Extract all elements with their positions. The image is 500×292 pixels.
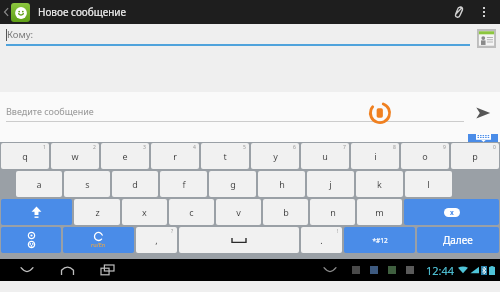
staticText: y <box>273 150 278 162</box>
button[interactable]: k <box>356 171 403 197</box>
staticText: 7 <box>343 144 346 151</box>
button[interactable]: . <box>301 227 342 253</box>
staticText: o <box>422 150 428 162</box>
button[interactable]: u <box>301 143 349 169</box>
button[interactable]: More options <box>474 2 494 22</box>
button[interactable]: s <box>64 171 110 197</box>
staticText: f <box>182 178 186 190</box>
staticText: 9 <box>443 144 446 151</box>
button[interactable]: e <box>101 143 149 169</box>
staticText: h <box>279 178 285 190</box>
staticText: r <box>173 150 177 162</box>
button[interactable]: ru/En <box>63 227 134 253</box>
button[interactable]: Space <box>179 227 299 253</box>
staticText: x <box>450 208 454 217</box>
staticText: . <box>320 234 323 246</box>
button[interactable]: a <box>16 171 62 197</box>
button[interactable]: c <box>169 199 214 225</box>
staticText: z <box>95 206 100 218</box>
staticText: x <box>142 206 147 218</box>
staticText: Далее <box>443 233 473 247</box>
button[interactable]: Keyboard <box>468 134 498 142</box>
button[interactable]: Введите сообщение <box>6 105 464 122</box>
staticText: n <box>330 206 336 218</box>
button[interactable]: h <box>258 171 305 197</box>
button[interactable]: w <box>51 143 99 169</box>
staticText: Кому: <box>7 28 34 41</box>
button[interactable]: Кому: <box>6 28 470 46</box>
staticText: l <box>427 178 430 190</box>
button[interactable]: r <box>151 143 199 169</box>
staticText: j <box>329 178 332 190</box>
button[interactable]: b <box>263 199 308 225</box>
button[interactable]: j <box>307 171 354 197</box>
staticText: e <box>122 150 128 162</box>
staticText: 0 <box>493 144 496 151</box>
button[interactable]: v <box>216 199 261 225</box>
button[interactable]: g <box>209 171 256 197</box>
staticText: Введите сообщение <box>6 105 94 117</box>
button[interactable]: Hide keyboard <box>318 259 342 281</box>
staticText: ? <box>171 228 174 235</box>
staticText: c <box>189 206 194 218</box>
button[interactable]: Pick contact <box>476 28 496 48</box>
staticText: 4 <box>193 144 196 151</box>
staticText: q <box>22 150 28 162</box>
button[interactable]: Back <box>14 259 40 281</box>
button[interactable]: p <box>451 143 499 169</box>
button[interactable]: o <box>401 143 449 169</box>
button[interactable]: t <box>201 143 249 169</box>
button[interactable]: d <box>112 171 158 197</box>
staticText: 12:44 <box>426 263 455 278</box>
staticText: a <box>36 178 42 190</box>
staticText: d <box>132 178 138 190</box>
button[interactable]: Backspace <box>404 199 499 225</box>
button[interactable]: n <box>310 199 355 225</box>
staticText: *#12 <box>372 236 388 245</box>
button[interactable]: Далее <box>417 227 499 253</box>
staticText: p <box>472 150 478 162</box>
staticText: g <box>230 178 236 190</box>
button[interactable]: Send <box>470 100 496 126</box>
button[interactable]: l <box>405 171 452 197</box>
button[interactable]: Recent apps <box>94 259 120 281</box>
staticText: u <box>322 150 328 162</box>
staticText: 6 <box>293 144 296 151</box>
button[interactable]: m <box>357 199 402 225</box>
staticText: 8 <box>393 144 396 151</box>
button[interactable]: y <box>251 143 299 169</box>
staticText: 1 <box>43 144 46 151</box>
button[interactable]: *#12 <box>344 227 415 253</box>
button[interactable]: Attach <box>446 0 470 24</box>
staticText: , <box>155 234 158 246</box>
staticText: Новое сообщение <box>38 5 127 19</box>
staticText: w <box>71 150 79 162</box>
button[interactable]: Home <box>54 259 80 281</box>
button[interactable]: f <box>160 171 207 197</box>
staticText: ru/En <box>91 241 106 248</box>
button[interactable]: , <box>136 227 177 253</box>
staticText: ! <box>337 228 339 235</box>
button[interactable]: Shift <box>1 199 72 225</box>
button[interactable]: q <box>1 143 49 169</box>
staticText: m <box>375 206 384 218</box>
staticText: b <box>283 206 289 218</box>
staticText: v <box>236 206 241 218</box>
staticText: s <box>85 178 90 190</box>
staticText: 2 <box>93 144 96 151</box>
staticText: 5 <box>243 144 246 151</box>
button[interactable]: x <box>122 199 167 225</box>
button[interactable]: i <box>351 143 399 169</box>
staticText: k <box>377 178 382 190</box>
staticText: t <box>223 150 227 162</box>
button[interactable]: z <box>74 199 120 225</box>
button[interactable]: Keyboard settings <box>1 227 61 253</box>
staticText: i <box>374 150 377 162</box>
staticText: 3 <box>143 144 146 151</box>
